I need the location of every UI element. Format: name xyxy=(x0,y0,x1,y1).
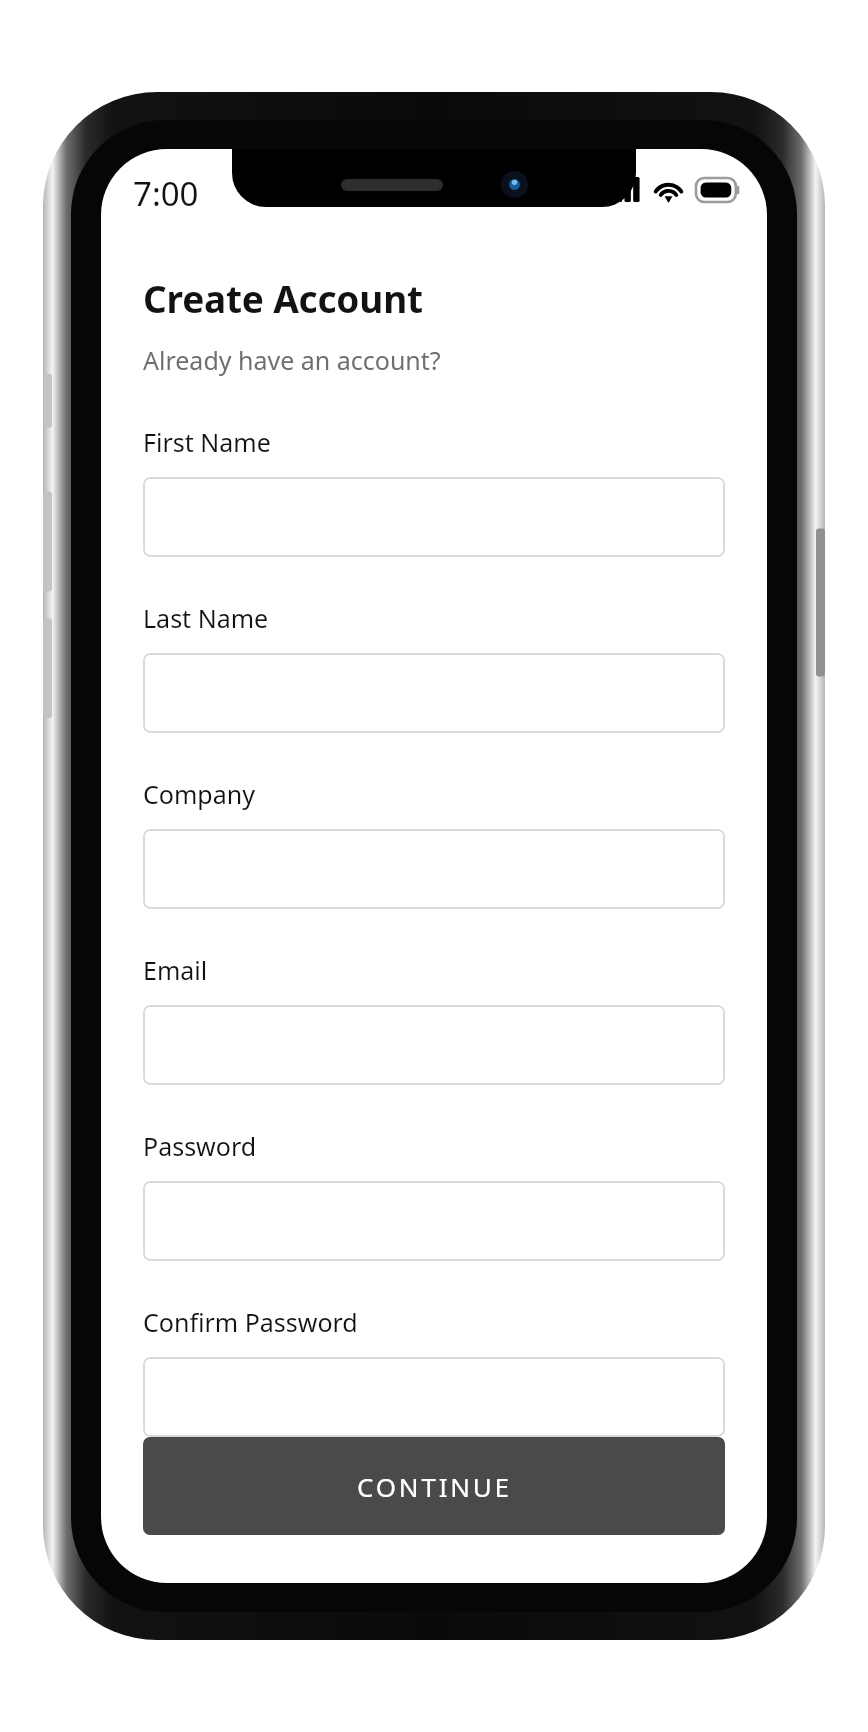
staticText: Email xyxy=(143,953,208,987)
button[interactable]: Email xyxy=(143,1005,725,1085)
button[interactable]: Password xyxy=(143,1181,725,1261)
staticText: Password xyxy=(143,1129,257,1163)
button[interactable]: Already have an account? xyxy=(143,343,441,377)
staticText: Company xyxy=(143,777,255,811)
staticText: Last Name xyxy=(143,601,269,635)
staticText: Confirm Password xyxy=(143,1305,358,1339)
staticText: Create Account xyxy=(143,273,423,323)
button[interactable]: Confirm Password xyxy=(143,1357,725,1437)
button[interactable]: CONTINUE xyxy=(143,1437,725,1535)
staticText: CONTINUE xyxy=(357,1469,512,1504)
button[interactable]: Company xyxy=(143,829,725,909)
button[interactable]: First Name xyxy=(143,477,725,557)
staticText: First Name xyxy=(143,425,271,459)
staticText: 7:00 xyxy=(133,171,199,216)
button[interactable]: Last Name xyxy=(143,653,725,733)
